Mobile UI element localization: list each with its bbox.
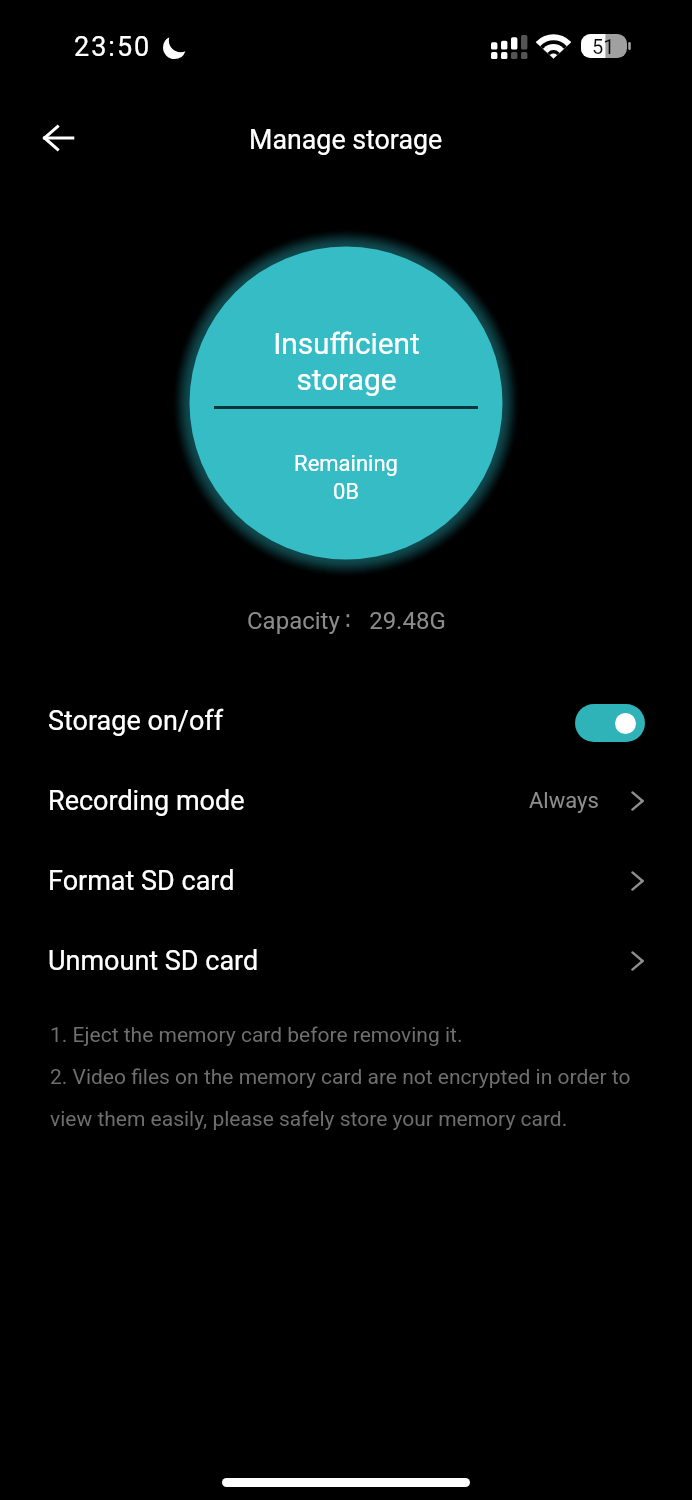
staticText: Storage on/off: [48, 705, 224, 737]
staticText: view them easily, please safely store yo…: [50, 1107, 568, 1132]
staticText: Remaining 0B: [294, 451, 398, 505]
button[interactable]: Format SD card: [0, 841, 692, 921]
button[interactable]: Back: [28, 108, 88, 168]
staticText: Recording mode: [48, 785, 245, 817]
staticText: 51: [592, 35, 615, 58]
staticText: Capacity ∶ 29.48G: [247, 607, 446, 635]
staticText: 23:50: [74, 31, 152, 63]
staticText: Unmount SD card: [48, 945, 259, 977]
staticText: Manage storage: [249, 124, 443, 155]
staticText: Format SD card: [48, 865, 235, 897]
button[interactable]: Unmount SD card: [0, 921, 692, 1001]
staticText: Always: [529, 788, 599, 814]
staticText: 1. Eject the memory card before removing…: [50, 1023, 463, 1048]
staticText: 2. Video files on the memory card are no…: [50, 1065, 631, 1090]
button[interactable]: Recording mode: [0, 761, 692, 841]
staticText: Insufficient storage: [273, 326, 420, 398]
button[interactable]: Storage on/off: [0, 681, 692, 761]
